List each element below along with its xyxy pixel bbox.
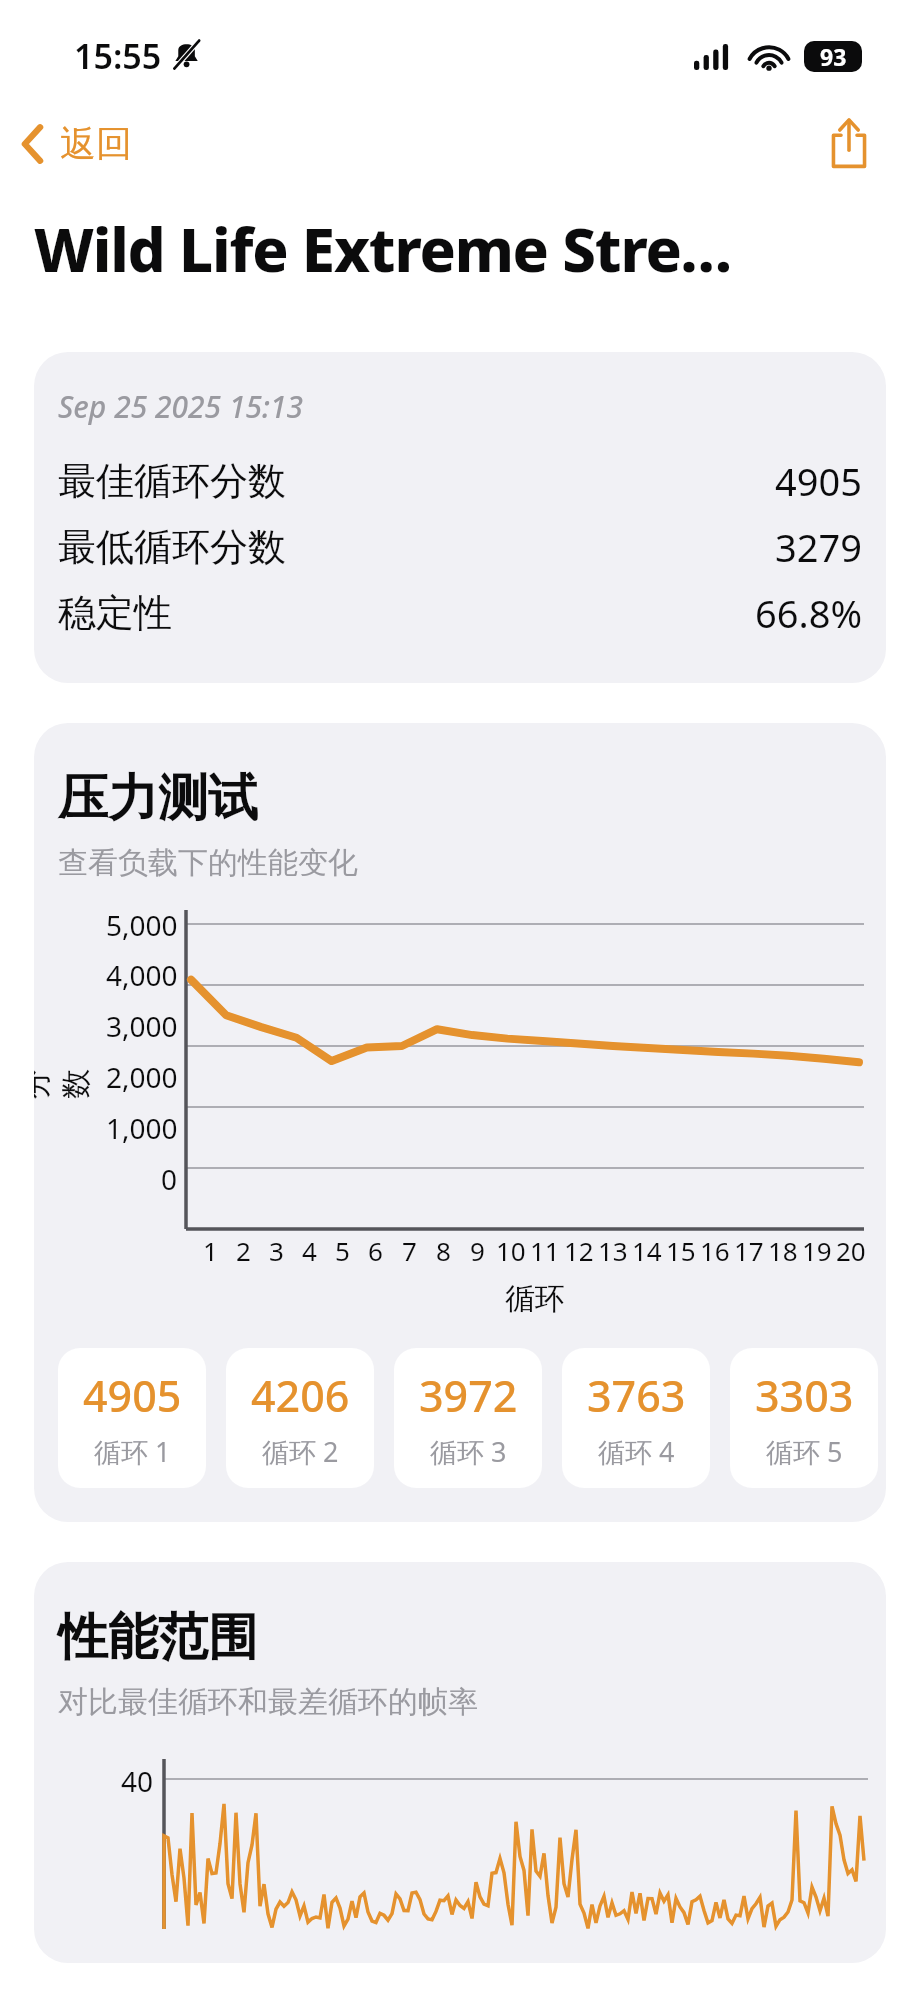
staticText: 40: [121, 1762, 154, 1800]
staticText: 3303: [755, 1366, 854, 1425]
staticText: 8: [436, 1233, 451, 1268]
staticText: 最低循环分数: [58, 523, 286, 571]
button[interactable]: 3972: [394, 1348, 542, 1488]
staticText: 返回: [60, 121, 132, 166]
staticText: 循环 4: [598, 1433, 675, 1470]
staticText: 3763: [587, 1366, 686, 1425]
staticText: 循环 5: [766, 1433, 843, 1470]
staticText: 4: [302, 1233, 317, 1268]
staticText: 4206: [251, 1366, 350, 1425]
button[interactable]: 4206: [226, 1348, 374, 1488]
staticText: Sep 25 2025 15:13: [58, 386, 304, 427]
staticText: 循环 2: [262, 1433, 339, 1470]
staticText: 2: [236, 1233, 251, 1268]
staticText: 3: [269, 1233, 284, 1268]
staticText: 循环: [184, 1280, 886, 1318]
staticText: 66.8%: [755, 587, 862, 639]
staticText: 12: [564, 1233, 594, 1268]
staticText: 4,000: [106, 956, 178, 994]
staticText: 最佳循环分数: [58, 457, 286, 505]
staticText: 性能范围: [58, 1606, 258, 1669]
staticText: 10: [496, 1233, 526, 1268]
staticText: 15:55: [74, 33, 162, 79]
staticText: 13: [598, 1233, 628, 1268]
staticText: 20: [836, 1233, 866, 1268]
staticText: 循环 3: [430, 1433, 507, 1470]
button[interactable]: 压力测试: [34, 723, 886, 1522]
button[interactable]: Share: [820, 109, 878, 177]
staticText: 查看负载下的性能变化: [58, 844, 358, 882]
staticText: 3279: [775, 521, 862, 573]
button[interactable]: 性能范围: [34, 1562, 886, 1963]
staticText: 1,000: [106, 1109, 178, 1147]
button[interactable]: 3303: [730, 1348, 878, 1488]
staticText: 11: [530, 1233, 560, 1268]
staticText: 14: [632, 1233, 662, 1268]
staticText: 循环 1: [94, 1433, 171, 1470]
staticText: 5,000: [106, 906, 178, 944]
button[interactable]: 返回: [12, 111, 140, 176]
staticText: 5: [335, 1233, 350, 1268]
staticText: 7: [402, 1233, 417, 1268]
button[interactable]: Sep 25 2025 15:13: [34, 352, 886, 683]
staticText: 0: [161, 1160, 178, 1198]
staticText: 2,000: [106, 1058, 178, 1096]
staticText: 18: [768, 1233, 798, 1268]
staticText: 4905: [775, 455, 862, 507]
staticText: 对比最佳循环和最差循环的帧率: [58, 1683, 478, 1721]
staticText: 分数: [34, 1055, 95, 1099]
staticText: 19: [802, 1233, 832, 1268]
staticText: 93: [820, 41, 847, 72]
staticText: 1: [203, 1233, 218, 1268]
staticText: Wild Life Extreme Stre…: [34, 208, 732, 290]
staticText: 17: [734, 1233, 764, 1268]
staticText: 4905: [83, 1366, 182, 1425]
button[interactable]: 4905: [58, 1348, 206, 1488]
staticText: 3972: [419, 1366, 518, 1425]
staticText: 3,000: [106, 1007, 178, 1045]
staticText: 稳定性: [58, 589, 172, 637]
button[interactable]: 3763: [562, 1348, 710, 1488]
staticText: 压力测试: [58, 767, 258, 830]
staticText: 16: [700, 1233, 730, 1268]
staticText: 9: [470, 1233, 485, 1268]
staticText: 15: [666, 1233, 696, 1268]
staticText: 6: [368, 1233, 383, 1268]
